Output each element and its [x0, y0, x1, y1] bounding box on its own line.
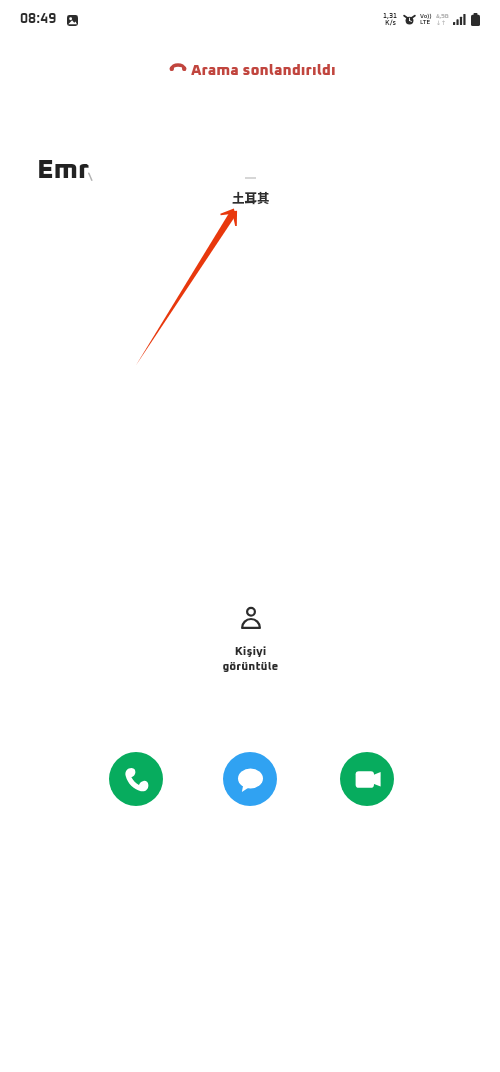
staticText: Kişiyi görüntüle	[222, 646, 279, 672]
staticText: Arama sonlandırıldı	[191, 63, 336, 78]
button[interactable]: Video call	[340, 752, 394, 806]
staticText: 08:49	[20, 12, 57, 26]
staticText: Vo))	[420, 13, 432, 19]
button[interactable]: Kişiyi görüntüle	[222, 607, 279, 672]
staticText: K/s	[385, 19, 397, 26]
staticText: ↓↑	[436, 19, 447, 26]
staticText: 土耳其	[232, 188, 270, 206]
staticText: LTE	[420, 19, 431, 25]
staticText: 1,31	[383, 12, 398, 19]
staticText: 4,5G	[436, 13, 449, 19]
button[interactable]: Message	[223, 752, 277, 806]
button[interactable]: Call	[109, 752, 163, 806]
staticText: Emr	[37, 157, 90, 184]
